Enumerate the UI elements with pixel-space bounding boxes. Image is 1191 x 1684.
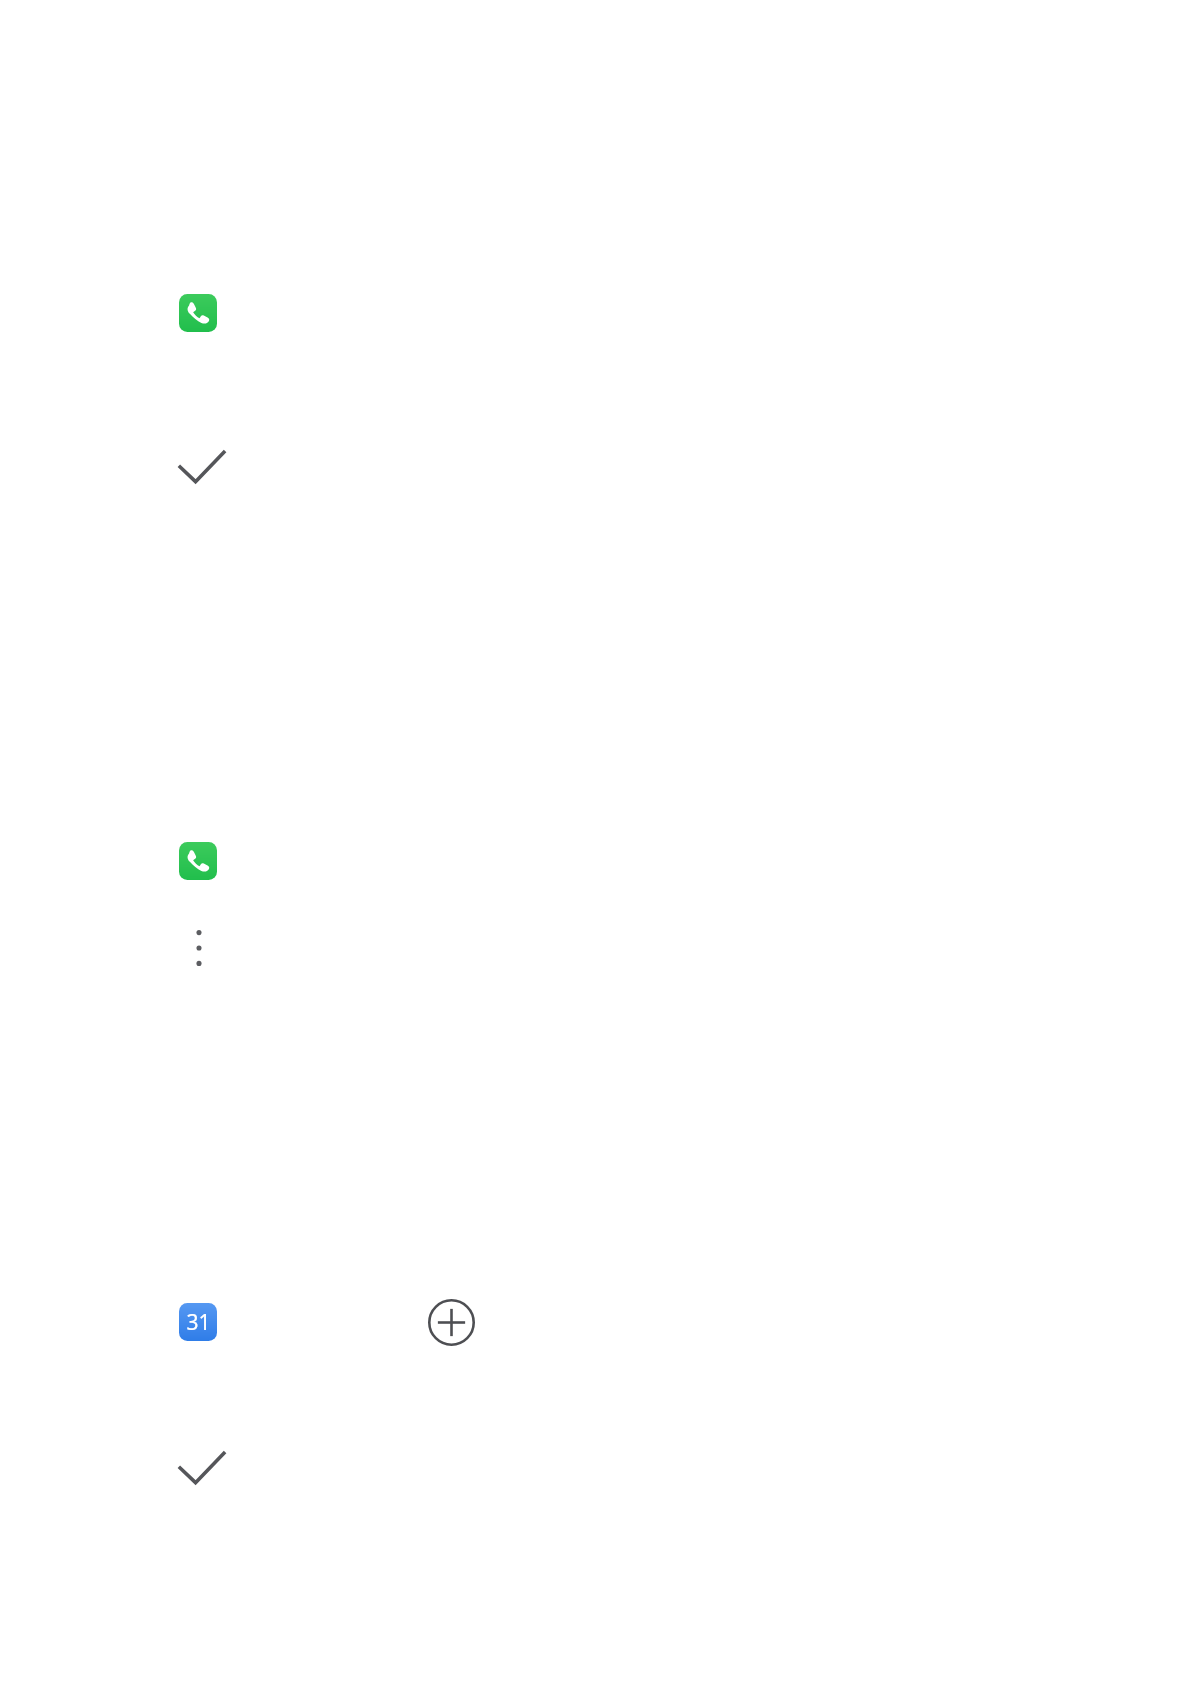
button[interactable]: Phone [179, 294, 217, 332]
button[interactable]: Phone [179, 842, 217, 880]
button[interactable]: More options [194, 928, 204, 968]
button[interactable]: Calendar [179, 1303, 217, 1341]
button[interactable]: Add [428, 1299, 475, 1346]
button[interactable]: Done [179, 1451, 225, 1485]
staticText: 31 [186, 1308, 211, 1337]
button[interactable]: Done [179, 450, 225, 484]
